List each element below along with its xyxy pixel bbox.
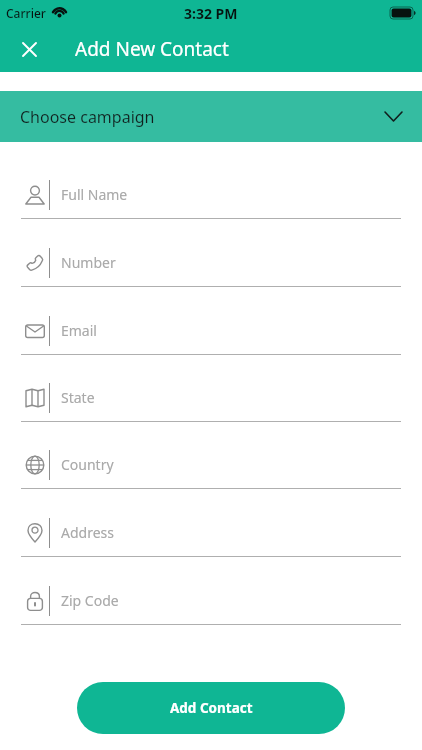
staticText: Carrier xyxy=(6,5,46,21)
staticText: Email xyxy=(61,321,97,340)
button[interactable]: Add Contact xyxy=(77,682,345,734)
button[interactable]: Number xyxy=(0,239,422,287)
button[interactable]: Choose campaign xyxy=(0,91,422,142)
staticText: Country xyxy=(61,455,114,474)
button[interactable]: Zip Code xyxy=(0,577,422,625)
button[interactable]: Email xyxy=(0,307,422,355)
staticText: Number xyxy=(61,253,116,272)
button[interactable]: State xyxy=(0,374,422,422)
staticText: Add New Contact xyxy=(75,36,229,62)
button[interactable]: Address xyxy=(0,509,422,557)
staticText: Address xyxy=(61,523,114,542)
staticText: 3:32 PM xyxy=(184,4,238,23)
staticText: Full Name xyxy=(61,185,128,204)
staticText: Add Contact xyxy=(170,699,253,717)
button[interactable]: Full Name xyxy=(0,171,422,219)
staticText: Zip Code xyxy=(61,591,119,610)
button[interactable]: Country xyxy=(0,441,422,489)
button[interactable] xyxy=(0,26,59,72)
staticText: State xyxy=(61,388,95,407)
staticText: Choose campaign xyxy=(20,106,155,128)
